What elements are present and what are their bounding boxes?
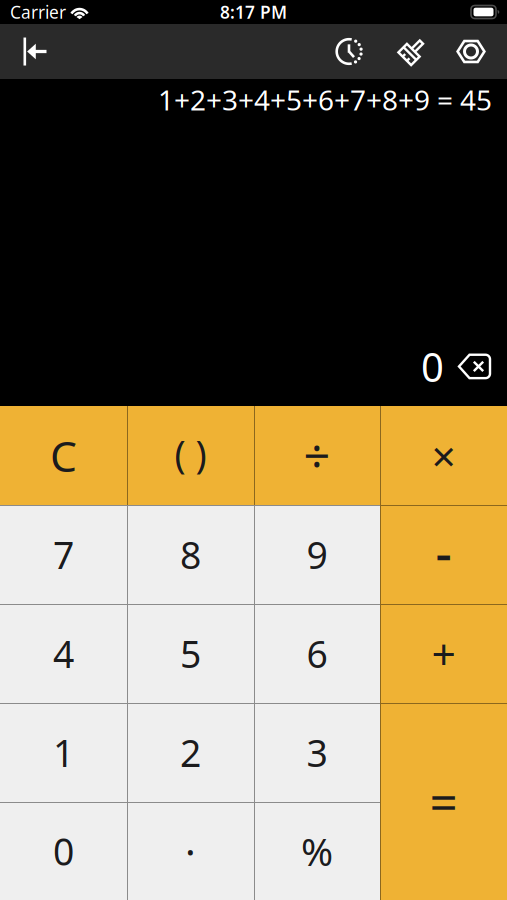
button[interactable]: Collapse display [10,24,60,79]
button[interactable]: Settings [440,24,502,79]
button[interactable]: 2 [127,703,254,802]
button[interactable]: 5 [127,604,254,703]
button[interactable]: 0 [0,802,127,900]
staticText: ( ) [174,429,206,478]
staticText: 7 [53,530,74,579]
staticText: 9 [306,530,327,579]
staticText: = [429,769,457,834]
button[interactable]: · [127,802,254,900]
button[interactable]: ÷ [254,406,380,505]
button[interactable]: % [254,802,380,900]
staticText: 0 [53,826,74,876]
staticText: Carrier [10,0,66,23]
staticText: · [185,824,196,877]
button[interactable]: = [380,703,507,900]
button[interactable]: Delete [444,354,494,379]
button[interactable]: 4 [0,604,127,703]
button[interactable]: History [314,24,384,79]
button[interactable]: + [380,604,507,703]
staticText: 1 [53,728,74,777]
staticText: ÷ [303,424,330,486]
staticText: 5 [180,629,201,678]
staticText: 8 [180,530,201,579]
button[interactable]: 8 [127,505,254,604]
button[interactable]: × [380,406,507,505]
staticText: - [435,518,451,585]
staticText: × [431,427,455,484]
staticText: % [301,825,333,877]
button[interactable]: 1 [0,703,127,802]
button[interactable]: Theme [384,24,440,79]
button[interactable]: 9 [254,505,380,604]
staticText: 4 [53,629,74,678]
button[interactable]: 6 [254,604,380,703]
button[interactable]: C [0,406,127,505]
staticText: C [50,427,77,484]
staticText: 6 [306,629,327,678]
button[interactable]: ( ) [127,406,254,505]
staticText: 0 [421,340,444,393]
staticText: 1+2+3+4+5+6+7+8+9 = 45 [158,81,492,118]
staticText: + [431,625,455,682]
staticText: 8:17 PM [220,0,287,23]
button[interactable]: - [380,505,507,604]
staticText: 2 [180,728,201,777]
button[interactable]: 3 [254,703,380,802]
staticText: 3 [306,728,327,777]
button[interactable]: 7 [0,505,127,604]
